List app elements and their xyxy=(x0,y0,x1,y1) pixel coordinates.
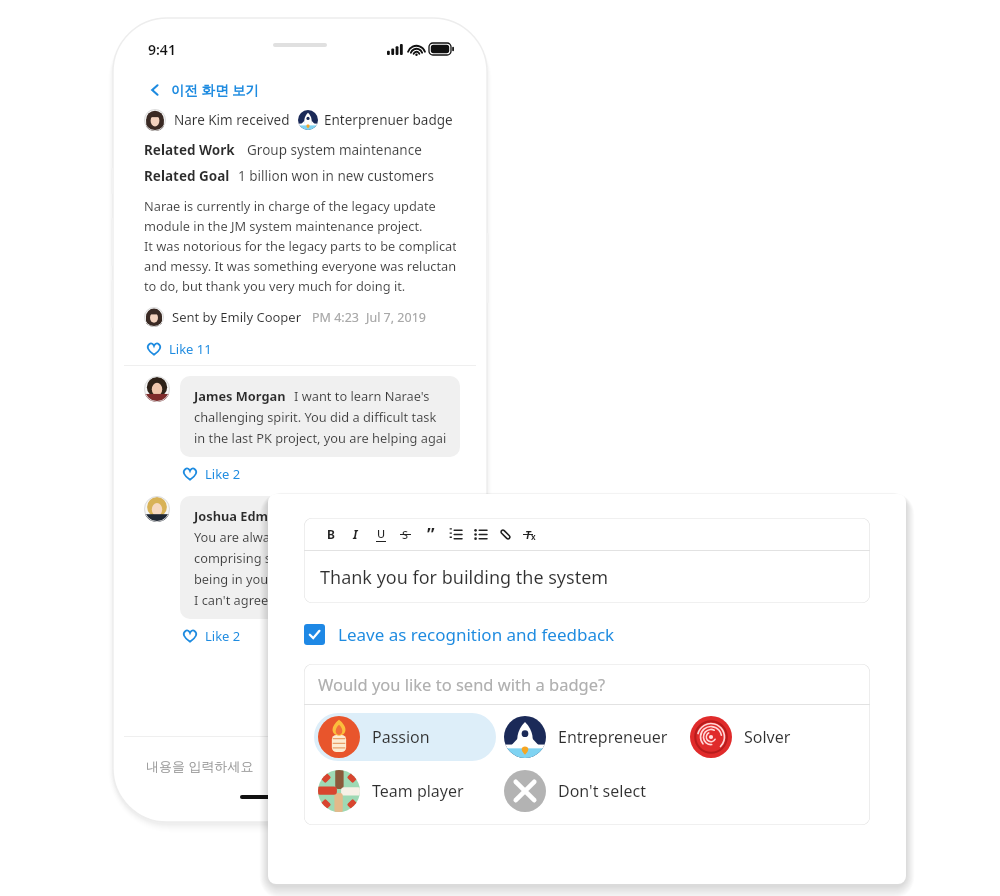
staticText: Enterprenuer badge xyxy=(324,111,453,129)
staticText: You are always showing a xyxy=(194,528,348,545)
staticText: Like 2 xyxy=(205,627,241,645)
staticText: in the last PK project, you are helping … xyxy=(194,429,446,446)
staticText: Sent by Emily Cooper xyxy=(172,308,302,326)
staticText: Like 11 xyxy=(169,340,212,358)
button[interactable]: Attach link xyxy=(493,522,518,546)
staticText: Nare Kim received xyxy=(174,111,290,129)
button[interactable]: Strikethrough xyxy=(393,522,418,546)
button[interactable]: Underline xyxy=(368,522,393,546)
staticText: ” xyxy=(427,523,435,546)
staticText: Related Work xyxy=(144,141,235,159)
button[interactable]: Bold xyxy=(318,522,343,546)
button[interactable]: Numbered list xyxy=(443,522,468,546)
staticText: Related Goal xyxy=(144,167,230,185)
staticText: 9:41 xyxy=(148,40,176,59)
staticText: and messy. It was something everyone was… xyxy=(144,257,456,274)
staticText: 이전 화면 보기 xyxy=(171,81,260,99)
button[interactable]: Joshua Edmonds xyxy=(180,496,460,619)
staticText: comprising spirit and try hard xyxy=(194,549,373,566)
button[interactable]: Don't select xyxy=(500,767,682,815)
staticText: I can't agree more! xyxy=(194,591,307,608)
button[interactable]: Entrepreneuer xyxy=(500,713,682,761)
staticText: I xyxy=(353,526,358,542)
staticText: U xyxy=(377,526,386,541)
staticText: Don't select xyxy=(558,780,646,802)
staticText: It was notorious for the legacy parts to… xyxy=(144,237,456,254)
button[interactable]: Team player xyxy=(314,767,496,815)
staticText: Thank you for building the system xyxy=(320,565,609,590)
staticText: 내용을 입력하세요 xyxy=(146,757,254,775)
staticText: Jul 7, 2019 xyxy=(366,309,426,326)
button[interactable]: Italic xyxy=(343,522,368,546)
staticText: PM 4:23 xyxy=(312,309,359,326)
button[interactable]: Bulleted list xyxy=(468,522,493,546)
button[interactable]: Passion xyxy=(314,713,496,761)
staticText: Passion xyxy=(372,726,430,748)
staticText: Joshua Edmonds xyxy=(194,507,299,524)
staticText: to do, but thank you very much for doing… xyxy=(144,277,406,294)
staticText: Team player xyxy=(372,780,464,802)
staticText: Narae is currently in charge of the lega… xyxy=(144,197,436,214)
staticText: being in your position. xyxy=(194,570,329,587)
staticText: I want to learn Narae's xyxy=(294,387,430,404)
staticText: Group system maintenance xyxy=(247,141,422,159)
button[interactable]: Like 11 xyxy=(144,337,214,361)
button[interactable]: Quote xyxy=(418,522,443,546)
button[interactable]: James Morgan xyxy=(180,376,460,457)
staticText: module in the JM system maintenance proj… xyxy=(144,217,423,234)
staticText: Solver xyxy=(744,726,791,748)
other: Don't select xyxy=(504,770,546,812)
staticText: Leave as recognition and feedback xyxy=(338,623,615,646)
staticText: B xyxy=(327,526,335,542)
staticText: 1 billion won in new customers xyxy=(238,167,434,185)
staticText: Like 2 xyxy=(205,465,241,483)
button[interactable]: Solver xyxy=(686,713,832,761)
staticText: Would you like to send with a badge? xyxy=(318,673,606,695)
staticText: James Morgan xyxy=(194,387,286,404)
staticText: Entrepreneuer xyxy=(558,726,668,748)
staticText: T xyxy=(525,527,531,542)
staticText: S xyxy=(402,527,409,542)
button[interactable]: Leave as recognition and feedback xyxy=(304,621,615,648)
button[interactable]: Thank you for building the system xyxy=(304,551,870,603)
button[interactable]: 이전 화면 보기 xyxy=(142,77,266,103)
staticText: x xyxy=(531,531,536,542)
button[interactable]: 내용을 입력하세요 xyxy=(124,737,476,795)
button[interactable]: Would you like to send with a badge? xyxy=(304,664,870,704)
button[interactable]: Like 2 xyxy=(180,462,243,486)
staticText: challenging spirit. You did a difficult … xyxy=(194,408,437,425)
button[interactable]: Clear formatting xyxy=(518,522,543,546)
button[interactable]: Like 2 xyxy=(180,624,243,648)
